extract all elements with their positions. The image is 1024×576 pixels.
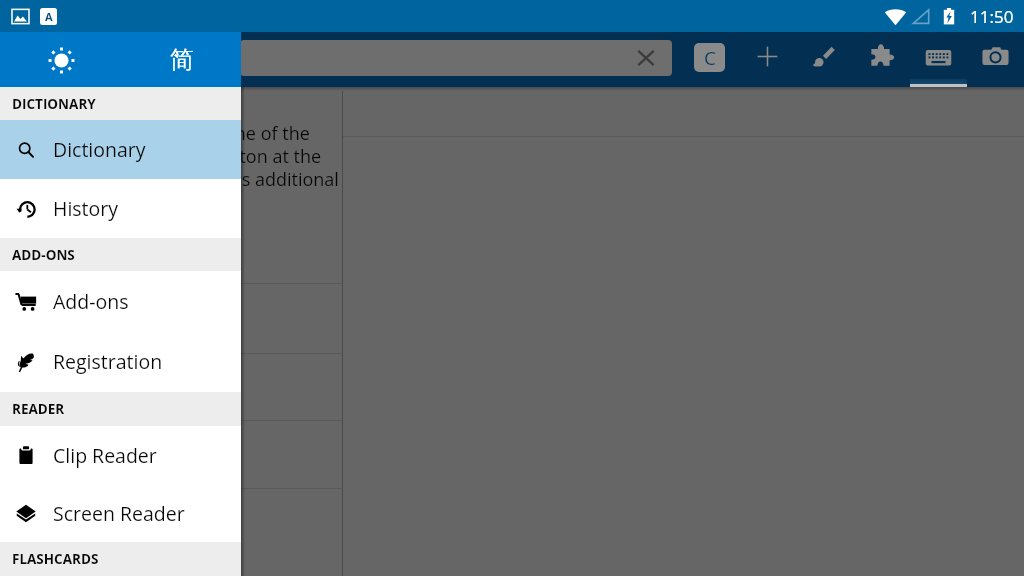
staticText: Dictionary: [53, 136, 146, 163]
staticText: 11:50: [970, 5, 1014, 28]
other: Battery charging: [939, 6, 959, 26]
button[interactable]: Dictionary: [0, 120, 241, 179]
staticText: A: [45, 9, 53, 24]
other: Screenshot: [12, 8, 29, 25]
staticText: ADD-ONS: [12, 246, 75, 264]
staticText: one of the: [224, 121, 310, 146]
button[interactable]: Draw: [796, 32, 853, 87]
button[interactable]: Clear: [634, 46, 658, 70]
button[interactable]: Simplified: [158, 36, 206, 84]
staticText: 简: [170, 45, 194, 75]
other: Wi-Fi: [884, 5, 907, 28]
other: Signal: [911, 7, 930, 26]
staticText: Clip Reader: [53, 442, 157, 469]
staticText: History: [53, 195, 119, 222]
button[interactable]: Screen Reader: [0, 484, 241, 542]
staticText: DICTIONARY: [12, 95, 96, 113]
button[interactable]: History: [0, 179, 241, 238]
other: Signal: [911, 7, 930, 26]
button[interactable]: Add: [739, 32, 796, 87]
button[interactable]: Registration: [0, 331, 241, 392]
staticText: FLASHCARDS: [12, 550, 99, 568]
other: Screenshot: [12, 8, 29, 25]
button[interactable]: Dictionary source: [681, 32, 738, 87]
button[interactable]: Camera: [967, 32, 1024, 87]
staticText: A: [45, 9, 53, 24]
button[interactable]: Add-ons: [0, 271, 241, 331]
staticText: 11:50: [970, 5, 1014, 28]
button[interactable]: Brightness: [38, 37, 84, 83]
other: Wi-Fi: [884, 5, 907, 28]
other: Battery charging: [939, 6, 959, 26]
staticText: Registration: [53, 348, 163, 375]
staticText: C: [704, 45, 716, 71]
button[interactable]: Clip Reader: [0, 426, 241, 484]
staticText: Screen Reader: [53, 500, 185, 527]
staticText: Add-ons: [53, 288, 129, 315]
staticText: READER: [12, 400, 65, 418]
button[interactable]: Extensions: [853, 32, 910, 87]
staticText: utton at the: [222, 144, 322, 169]
button[interactable]: Keyboard: [910, 32, 967, 87]
button[interactable]: Clear: [240, 40, 672, 76]
staticText: ess additional: [223, 167, 339, 192]
